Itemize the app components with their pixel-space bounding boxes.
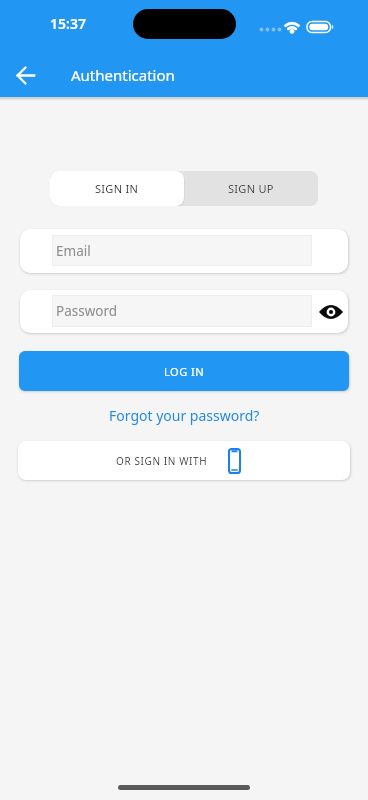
button[interactable]: Email — [20, 229, 348, 273]
button[interactable]: Forgot your password? — [109, 406, 260, 425]
button[interactable] — [308, 292, 348, 332]
staticText: SIGN IN — [95, 181, 139, 196]
button[interactable]: LOG IN — [19, 351, 349, 391]
button[interactable] — [6, 55, 46, 95]
staticText: Authentication — [71, 65, 175, 85]
button[interactable]: SIGN UP — [184, 171, 318, 206]
staticText: Password — [56, 302, 118, 320]
button[interactable]: Password — [20, 290, 348, 333]
staticText: Email — [56, 242, 91, 260]
button[interactable]: OR SIGN IN WITH — [18, 441, 350, 480]
button[interactable]: SIGN IN — [50, 171, 184, 206]
staticText: 15:37 — [50, 14, 86, 33]
staticText: SIGN UP — [228, 181, 274, 196]
staticText: LOG IN — [164, 364, 205, 379]
staticText: OR SIGN IN WITH — [116, 454, 208, 468]
